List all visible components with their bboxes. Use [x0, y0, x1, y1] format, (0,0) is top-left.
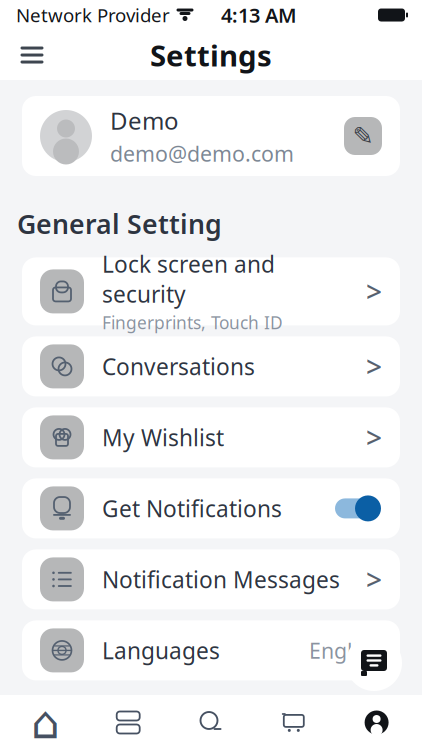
staticText: >: [366, 561, 382, 598]
staticText: Demo: [110, 104, 179, 136]
staticText: Conversations: [102, 351, 255, 381]
staticText: Lock screen and security: [102, 249, 275, 309]
staticText: My Wishlist: [102, 422, 224, 452]
staticText: Settings: [150, 35, 272, 74]
staticText: >: [366, 348, 382, 385]
staticText: English: [309, 636, 382, 664]
button[interactable]: Notification Messages: [22, 549, 400, 609]
button[interactable]: Get Notifications: [22, 478, 400, 538]
button[interactable]: Lock screen and security: [22, 257, 400, 325]
button[interactable]: Profile: [335, 695, 418, 749]
button[interactable]: Categories: [87, 695, 170, 749]
staticText: >: [366, 419, 382, 456]
button[interactable]: My Wishlist: [22, 407, 400, 467]
staticText: Network Provider: [16, 3, 170, 27]
button[interactable]: Edit profile: [344, 117, 382, 155]
staticText: ⌂: [31, 697, 60, 748]
staticText: Languages: [102, 635, 220, 665]
staticText: Get Notifications: [102, 493, 282, 523]
button[interactable]: Cart: [252, 695, 335, 749]
staticText: Notification Messages: [102, 564, 340, 594]
button[interactable]: Menu: [9, 33, 55, 77]
button[interactable]: Chat support: [344, 633, 404, 693]
button[interactable]: Languages: [22, 620, 400, 680]
staticText: ✎: [352, 122, 373, 150]
staticText: General Setting: [17, 206, 222, 241]
staticText: Fingerprints, Touch ID: [102, 311, 283, 334]
staticText: 4:13 AM: [221, 2, 297, 28]
button[interactable]: Search: [170, 695, 252, 749]
button[interactable]: Home: [4, 695, 87, 749]
staticText: demo@demo.com: [110, 139, 294, 168]
button[interactable]: Conversations: [22, 336, 400, 396]
staticText: >: [366, 273, 382, 310]
